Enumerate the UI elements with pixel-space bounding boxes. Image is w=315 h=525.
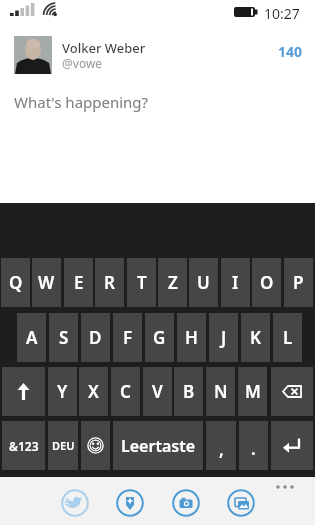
staticText: V xyxy=(152,380,163,403)
button[interactable]: G xyxy=(145,313,174,362)
staticText: U xyxy=(197,271,210,294)
staticText: W xyxy=(38,271,55,294)
button[interactable]: O xyxy=(252,258,281,307)
button[interactable]: V xyxy=(143,367,172,416)
button[interactable]: M xyxy=(238,367,267,416)
button[interactable]: C xyxy=(111,367,140,416)
staticText: H xyxy=(185,326,198,349)
staticText: K xyxy=(250,326,261,349)
button[interactable] xyxy=(271,367,313,416)
staticText: X xyxy=(88,380,99,403)
button[interactable]: . xyxy=(239,421,268,470)
button[interactable]: S xyxy=(49,313,78,362)
button[interactable]: U xyxy=(189,258,218,307)
staticText: @vowe xyxy=(62,55,103,71)
button[interactable]: H xyxy=(177,313,206,362)
button[interactable]: A xyxy=(17,313,46,362)
staticText: E xyxy=(74,271,84,294)
staticText: N xyxy=(214,380,228,403)
staticText: D xyxy=(89,326,102,349)
staticText: . xyxy=(251,437,256,460)
button[interactable]: F xyxy=(113,313,142,362)
staticText: A xyxy=(26,326,38,349)
staticText: Leertaste xyxy=(121,435,196,457)
staticText: T xyxy=(137,271,147,294)
staticText: R xyxy=(104,271,115,294)
button[interactable] xyxy=(172,489,200,517)
staticText: DEU xyxy=(52,438,75,453)
staticText: J xyxy=(221,326,227,349)
staticText: P xyxy=(293,271,304,294)
staticText: I xyxy=(232,271,239,294)
button[interactable]: B xyxy=(174,367,203,416)
button[interactable] xyxy=(61,489,89,517)
staticText: 10:27 xyxy=(264,4,300,23)
staticText: &123 xyxy=(9,438,39,454)
button[interactable]: Leertaste xyxy=(113,421,203,470)
button[interactable]: J xyxy=(209,313,238,362)
button[interactable] xyxy=(116,489,144,517)
staticText: L xyxy=(283,326,293,349)
button[interactable]: E xyxy=(64,258,93,307)
staticText: Q xyxy=(9,271,23,294)
staticText: C xyxy=(120,380,131,403)
button[interactable]: Z xyxy=(158,258,187,307)
staticText: M xyxy=(245,380,261,403)
staticText: F xyxy=(123,326,133,349)
staticText: Y xyxy=(57,380,68,403)
staticText: What's happening? xyxy=(14,92,149,112)
button[interactable]: N xyxy=(206,367,235,416)
button[interactable]: , xyxy=(206,421,236,470)
button[interactable] xyxy=(2,367,45,416)
button[interactable] xyxy=(227,489,255,517)
button[interactable] xyxy=(268,477,308,497)
button[interactable]: Y xyxy=(48,367,77,416)
button[interactable]: I xyxy=(221,258,250,307)
staticText: O xyxy=(260,271,274,294)
button[interactable]: D xyxy=(81,313,110,362)
button[interactable]: Volker Weber xyxy=(62,39,146,57)
button[interactable]: W xyxy=(32,258,61,307)
button[interactable]: Q xyxy=(1,258,30,307)
button[interactable]: L xyxy=(273,313,302,362)
button[interactable]: K xyxy=(241,313,270,362)
staticText: , xyxy=(219,438,224,461)
button[interactable]: R xyxy=(95,258,124,307)
button[interactable] xyxy=(81,421,110,470)
button[interactable]: P xyxy=(284,258,313,307)
button[interactable] xyxy=(271,421,313,470)
staticText: G xyxy=(153,326,166,349)
staticText: B xyxy=(183,380,195,403)
button[interactable]: T xyxy=(127,258,156,307)
staticText: 140 xyxy=(278,42,303,61)
button[interactable]: &123 xyxy=(2,421,45,470)
staticText: Z xyxy=(168,271,178,294)
staticText: S xyxy=(59,326,69,349)
button[interactable]: X xyxy=(79,367,108,416)
button[interactable]: DEU xyxy=(48,421,78,470)
